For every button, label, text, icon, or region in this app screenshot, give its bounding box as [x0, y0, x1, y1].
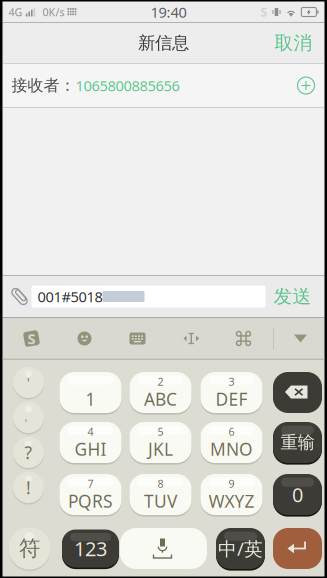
button[interactable]: Emoji [65, 321, 103, 355]
staticText: 1 [85, 388, 95, 411]
button[interactable]: Attach file [7, 287, 31, 305]
staticText: ? [24, 441, 32, 464]
staticText: 4 [87, 424, 93, 439]
button[interactable]: Space [120, 528, 207, 569]
button[interactable]: 123 [62, 528, 119, 569]
staticText [89, 374, 92, 389]
staticText: JKL [148, 438, 173, 461]
button[interactable]: Shortcuts [224, 321, 262, 355]
staticText: 4G [8, 5, 22, 19]
button[interactable]: 5 [129, 420, 191, 464]
button[interactable]: 中/英 [216, 526, 265, 570]
staticText: 0K/s [42, 5, 64, 19]
staticText: 发送 [273, 285, 311, 308]
staticText: S [260, 4, 267, 20]
staticText: 3 [228, 374, 234, 389]
button[interactable]: 0 [273, 472, 322, 516]
staticText: 5 [157, 424, 163, 439]
button[interactable]: Input method [12, 321, 50, 355]
button[interactable]: Add recipient [293, 73, 318, 98]
button[interactable]: 6 [200, 420, 262, 464]
staticText: 7 [87, 476, 93, 491]
staticText: 重输 [280, 432, 314, 453]
button[interactable]: 9 [200, 472, 262, 516]
staticText: 001#5018 [37, 287, 102, 306]
button[interactable]: ' [13, 365, 44, 399]
staticText: ! [26, 476, 31, 499]
button[interactable]: 7 [59, 472, 121, 516]
staticText: 新信息 [138, 32, 189, 54]
staticText: 123 [74, 535, 107, 562]
staticText: 。 [24, 412, 33, 423]
button[interactable]: 符 [8, 526, 50, 571]
staticText: DEF [215, 388, 247, 411]
staticText: 1065800885656 [75, 76, 179, 95]
button[interactable]: ! [13, 470, 44, 504]
staticText: 接收者： [11, 76, 75, 95]
staticText: ' [27, 374, 30, 390]
button[interactable]: 3 [200, 370, 262, 414]
staticText: 2 [157, 374, 163, 389]
button[interactable]: 8 [129, 472, 191, 516]
staticText: GHI [74, 438, 106, 461]
staticText: ABC [144, 388, 177, 411]
staticText: 9 [228, 476, 234, 491]
staticText: TUV [144, 490, 177, 513]
staticText: PQRS [68, 490, 113, 513]
button[interactable]: Hide keyboard [281, 321, 319, 355]
button[interactable]: 。 [13, 400, 44, 434]
button[interactable]: 2 [129, 370, 191, 414]
staticText: S [27, 329, 35, 348]
button[interactable]: Delete [273, 372, 322, 413]
staticText: 取消 [274, 31, 312, 54]
staticText: 符 [19, 535, 40, 562]
staticText: 8 [157, 476, 163, 491]
staticText: 19:40 [150, 2, 186, 22]
staticText: WXYZ [208, 490, 254, 513]
button[interactable]: Move cursor [172, 321, 210, 355]
button[interactable]: Keyboard layout [118, 321, 156, 355]
button[interactable]: Return [273, 528, 322, 569]
staticText: 0 [292, 481, 303, 508]
staticText: 中/英 [218, 536, 263, 561]
button[interactable]: 重输 [273, 420, 322, 464]
button[interactable]: ? [13, 435, 44, 469]
button[interactable]: 发送 [265, 285, 319, 308]
staticText: 6 [228, 424, 234, 439]
staticText: MNO [210, 438, 253, 461]
button[interactable]: 4 [59, 420, 121, 464]
button[interactable]: 取消 [262, 25, 324, 60]
button[interactable] [59, 370, 121, 414]
